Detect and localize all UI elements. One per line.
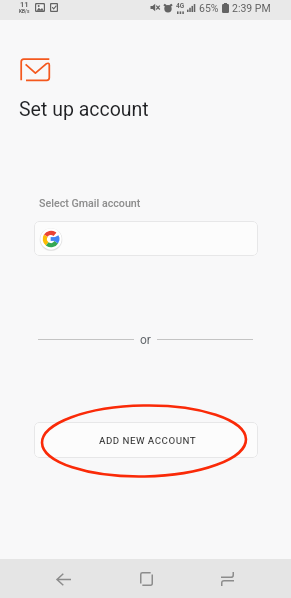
staticText: or bbox=[140, 333, 151, 347]
button[interactable]: ADD NEW ACCOUNT bbox=[34, 422, 258, 458]
staticText: 11 bbox=[20, 0, 29, 9]
staticText: Set up account bbox=[19, 98, 149, 121]
staticText: 65% bbox=[199, 2, 219, 14]
staticText: KB/s bbox=[19, 9, 30, 15]
staticText: 4G bbox=[176, 2, 185, 10]
staticText: ADD NEW ACCOUNT bbox=[99, 435, 197, 446]
button[interactable] bbox=[34, 221, 258, 256]
button[interactable]: Back bbox=[51, 566, 77, 592]
staticText: Select Gmail account bbox=[39, 197, 141, 210]
button[interactable]: Home bbox=[133, 566, 159, 592]
button[interactable]: Recents bbox=[214, 566, 240, 592]
staticText: 2:39 PM bbox=[232, 2, 271, 14]
